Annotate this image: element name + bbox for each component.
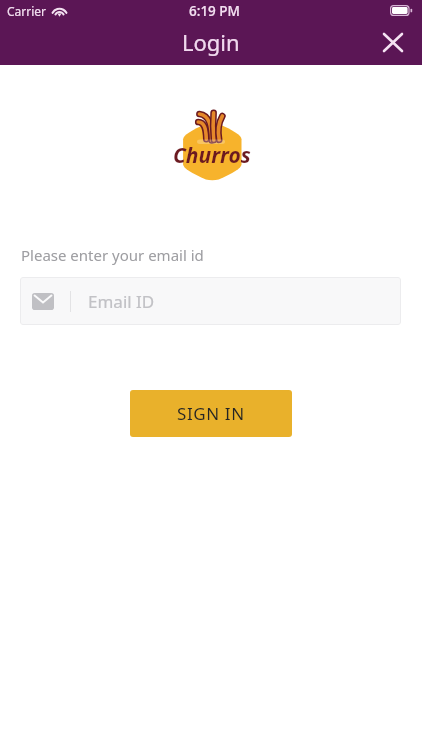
staticText: Login: [182, 27, 240, 57]
staticText: Churros: [173, 141, 251, 170]
staticText: Email ID: [88, 290, 155, 313]
staticText: Carrier: [7, 3, 47, 19]
button[interactable]: SIGN IN: [130, 390, 292, 437]
staticText: 6:19 PM: [189, 2, 240, 20]
staticText: Please enter your email id: [21, 245, 204, 265]
button[interactable]: Close: [373, 22, 413, 62]
button[interactable]: Email ID: [20, 277, 401, 325]
staticText: SIGN IN: [177, 402, 245, 425]
